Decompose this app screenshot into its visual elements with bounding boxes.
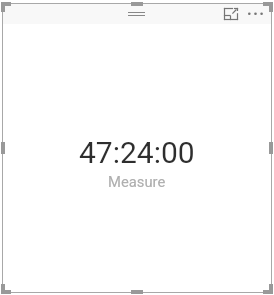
button[interactable]: More options [244,4,268,23]
staticText: 47:24:00 [79,135,195,165]
button[interactable]: Open in full [221,4,241,23]
button[interactable]: Menu [123,4,150,23]
staticText: Measure [108,173,166,190]
